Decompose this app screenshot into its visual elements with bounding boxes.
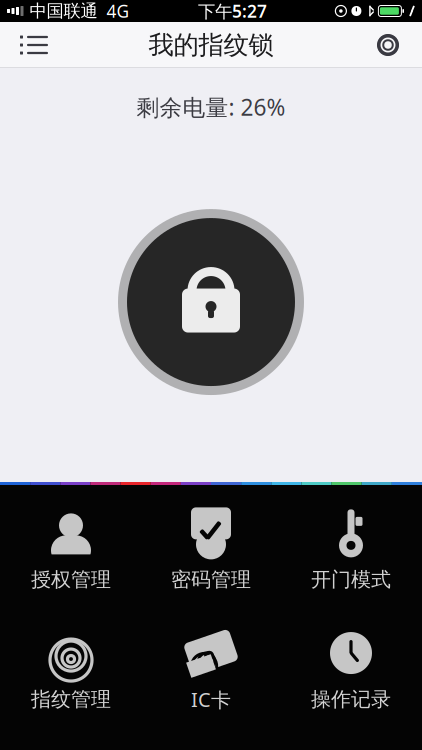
staticText: 4G — [106, 0, 129, 22]
button[interactable]: 操作记录 — [281, 616, 421, 724]
staticText: 授权管理 — [31, 567, 111, 592]
staticText: 指纹管理 — [31, 687, 111, 712]
staticText: 开门模式 — [311, 567, 391, 592]
staticText: IC卡 — [191, 686, 231, 713]
staticText: 我的指纹锁 — [148, 29, 273, 60]
button[interactable]: 菜单 — [6, 22, 62, 68]
button[interactable]: 锁定 / 解锁 — [118, 209, 304, 395]
button[interactable]: IC卡 — [141, 616, 281, 724]
button[interactable]: 密码管理 — [141, 497, 281, 605]
staticText: 操作记录 — [311, 687, 391, 712]
button[interactable]: 设置 — [360, 22, 416, 68]
staticText: 中国联通 — [29, 0, 97, 22]
button[interactable]: 授权管理 — [1, 497, 141, 605]
staticText: 密码管理 — [171, 567, 251, 592]
button[interactable]: 指纹管理 — [1, 616, 141, 724]
staticText: 下午5:27 — [198, 0, 267, 22]
staticText: 剩余电量: 26% — [136, 92, 285, 122]
button[interactable]: 开门模式 — [281, 497, 421, 605]
